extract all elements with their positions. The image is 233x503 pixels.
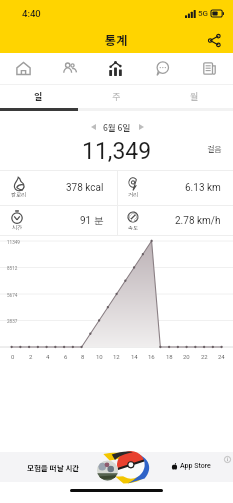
staticText: 통계: [105, 31, 128, 48]
staticText: 14: [131, 353, 138, 360]
staticText: 11349: [7, 240, 20, 245]
staticText: 6.13 km: [185, 182, 221, 194]
staticText: 18: [166, 353, 173, 360]
staticText: 5674: [7, 293, 18, 298]
button[interactable]: Share: [201, 27, 227, 53]
staticText: App Store: [180, 462, 211, 470]
button[interactable]: 속도: [116, 205, 233, 236]
staticText: 걸음: [207, 143, 222, 155]
staticText: 16: [148, 353, 155, 360]
button[interactable]: 시간: [0, 205, 116, 236]
staticText: 378 kcal: [66, 182, 104, 194]
staticText: 시간: [12, 224, 23, 232]
button[interactable]: Next day: [131, 117, 151, 137]
staticText: 5G: [198, 9, 208, 18]
staticText: 속도: [128, 224, 139, 232]
staticText: 0: [11, 353, 15, 360]
button[interactable]: 거리: [116, 170, 233, 205]
staticText: 일: [34, 90, 43, 103]
staticText: 칼로리: [11, 191, 27, 199]
staticText: 8512: [7, 266, 18, 271]
button[interactable]: 모험을 떠날 시간: [0, 452, 233, 482]
button[interactable]: 월: [155, 85, 233, 107]
staticText: 월: [190, 90, 199, 103]
button[interactable]: Statistics: [92, 53, 139, 84]
staticText: 20: [183, 353, 190, 360]
staticText: 10: [96, 353, 103, 360]
staticText: 24: [218, 353, 225, 360]
staticText: 2.78 km/h: [175, 215, 221, 227]
button[interactable]: Previous day: [83, 117, 103, 137]
staticText: 6월 6일: [103, 121, 131, 133]
button[interactable]: Home: [0, 53, 46, 84]
staticText: 11,349: [82, 138, 152, 164]
staticText: 모험을 떠날 시간: [27, 462, 80, 473]
button[interactable]: 주: [77, 85, 155, 107]
staticText: 2837: [7, 319, 18, 324]
button[interactable]: Chat: [139, 53, 186, 84]
staticText: 91 분: [80, 214, 104, 227]
staticText: 거리: [128, 191, 139, 199]
button[interactable]: 일: [0, 85, 77, 107]
staticText: 6: [64, 353, 68, 360]
staticText: 4:40: [22, 8, 41, 19]
staticText: 22: [201, 353, 208, 360]
staticText: 주: [112, 90, 121, 103]
button[interactable]: Friends: [46, 53, 92, 84]
button[interactable]: Ad information: [222, 454, 232, 464]
staticText: 4: [46, 353, 50, 360]
staticText: 2: [29, 353, 33, 360]
button[interactable]: News: [186, 53, 233, 84]
button[interactable]: 칼로리: [0, 170, 116, 205]
staticText: 8: [81, 353, 85, 360]
staticText: 12: [113, 353, 120, 360]
